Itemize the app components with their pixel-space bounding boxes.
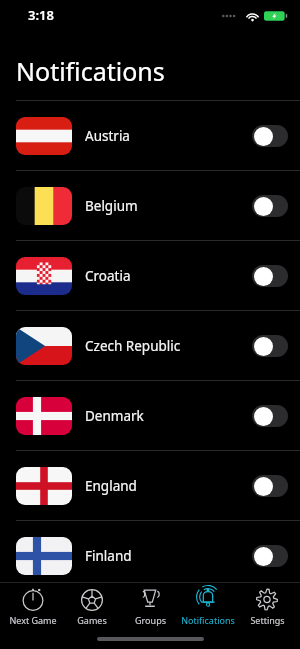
button[interactable]: Finland	[0, 521, 300, 590]
staticText: Notifications	[16, 54, 165, 88]
button[interactable]: Denmark	[0, 381, 300, 450]
staticText: Belgium	[85, 197, 138, 215]
staticText: Notifications	[181, 614, 235, 626]
staticText: Settings	[250, 614, 285, 626]
button[interactable]: Games	[64, 586, 120, 626]
button[interactable]: Toggle notification	[252, 405, 288, 427]
button[interactable]: Toggle notification	[252, 125, 288, 147]
button[interactable]: Toggle notification	[252, 475, 288, 497]
button[interactable]: England	[0, 451, 300, 520]
staticText: Finland	[85, 547, 132, 565]
button[interactable]: Czech Republic	[0, 311, 300, 380]
button[interactable]: Austria	[0, 101, 300, 170]
button[interactable]: Next Game	[5, 586, 61, 626]
staticText: Groups	[135, 614, 166, 626]
staticText: Croatia	[85, 267, 131, 285]
staticText: 3:18	[28, 6, 54, 24]
button[interactable]: Belgium	[0, 171, 300, 240]
button[interactable]: Toggle notification	[252, 335, 288, 357]
button[interactable]: Notifications	[180, 586, 236, 626]
button[interactable]: Toggle notification	[252, 195, 288, 217]
staticText: England	[85, 477, 137, 495]
button[interactable]: Settings	[239, 586, 295, 626]
staticText: Czech Republic	[85, 337, 181, 355]
staticText: Games	[77, 614, 107, 626]
staticText: Next Game	[9, 614, 57, 626]
button[interactable]: Toggle notification	[252, 545, 288, 567]
button[interactable]: Croatia	[0, 241, 300, 310]
button[interactable]: Toggle notification	[252, 265, 288, 287]
button[interactable]: Groups	[122, 586, 178, 626]
staticText: Denmark	[85, 407, 144, 425]
staticText: Austria	[85, 127, 130, 145]
